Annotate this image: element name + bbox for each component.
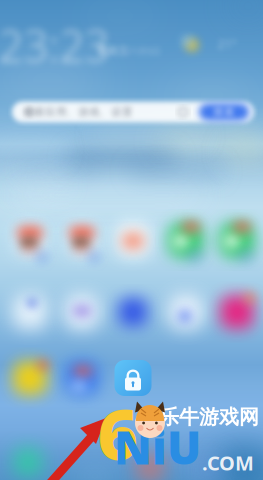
button[interactable]: App <box>0 0 263 480</box>
button[interactable]: Chat <box>0 0 263 480</box>
button[interactable]: App <box>0 0 263 480</box>
button[interactable]: App <box>0 0 263 480</box>
button[interactable]: App <box>0 0 263 480</box>
staticText: NiU <box>114 417 201 477</box>
button[interactable]: Chat <box>0 0 263 480</box>
button[interactable]: App <box>0 0 263 480</box>
staticText: .COM <box>202 449 254 476</box>
button[interactable]: App <box>0 0 263 480</box>
staticText: 6 <box>97 387 138 479</box>
button[interactable]: App <box>0 0 263 480</box>
button[interactable]: App <box>0 0 263 480</box>
button[interactable]: Search <box>0 0 263 480</box>
staticText: 乐牛游戏网 <box>159 405 259 429</box>
button[interactable]: Lock <box>0 0 263 480</box>
button[interactable]: App <box>0 0 263 480</box>
button[interactable]: App <box>0 0 263 480</box>
